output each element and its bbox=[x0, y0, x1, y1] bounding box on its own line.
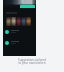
button[interactable]: Recipe photo bbox=[26, 17, 31, 26]
button[interactable]: Recipe photo bbox=[16, 17, 21, 26]
staticText: to your own kitchen bbox=[0, 61, 64, 65]
button[interactable]: Start cooking bbox=[20, 5, 35, 8]
button[interactable] bbox=[5, 40, 35, 45]
staticText: Suggestions tailored bbox=[0, 58, 64, 62]
button[interactable] bbox=[5, 29, 35, 34]
button[interactable]: Recipe photo bbox=[11, 17, 16, 26]
button[interactable]: Recipe photo bbox=[21, 17, 26, 26]
button[interactable]: Recipe photo bbox=[6, 17, 11, 26]
